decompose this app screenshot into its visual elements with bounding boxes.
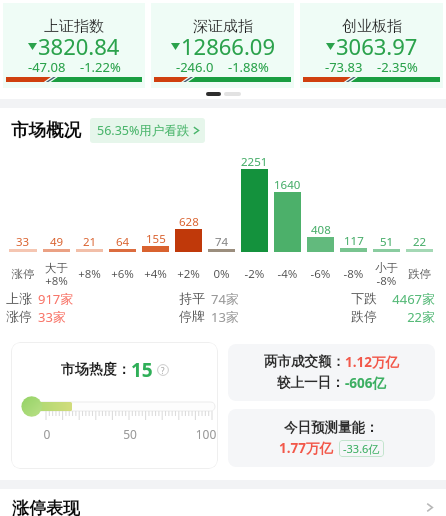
staticText: -47.08 [28, 58, 66, 76]
staticText: 50 [114, 426, 146, 442]
staticText: 今日预测量能： [284, 419, 379, 436]
staticText: 74家 [211, 290, 239, 305]
staticText: 较上一日： [277, 374, 345, 391]
staticText: -33.6亿 [343, 441, 380, 456]
staticText: -4% [271, 266, 304, 282]
staticText: 21 [83, 234, 97, 250]
staticText: 56.35%用户看跌 [97, 122, 190, 139]
staticText: 33家 [38, 308, 66, 323]
staticText: -2.35% [377, 58, 418, 76]
staticText: +4% [139, 266, 172, 282]
button[interactable]: 两市成交额： [228, 344, 435, 401]
staticText: 小于 -8% [370, 261, 403, 287]
staticText: 涨停表现 [12, 498, 80, 516]
staticText: 跌停 [351, 308, 377, 323]
staticText: -6% [304, 266, 337, 282]
button[interactable]: 涨停表现 [0, 489, 446, 516]
staticText: +8% [73, 266, 106, 282]
staticText: -1.88% [228, 58, 269, 76]
staticText: 1.12万亿 [345, 353, 399, 371]
staticText: 408 [311, 222, 331, 238]
other: 更多 [426, 501, 434, 514]
staticText: 两市成交额： [264, 353, 345, 370]
button[interactable]: 深证成指 [151, 3, 294, 88]
button[interactable]: 市场热度： [11, 342, 218, 469]
staticText: -606亿 [345, 374, 386, 392]
staticText: 涨停 [6, 267, 40, 281]
staticText: 74 [215, 234, 229, 250]
button[interactable]: 56.35%用户看跌 [90, 118, 205, 143]
staticText: ? [161, 365, 165, 376]
staticText: 3820.84 [38, 31, 120, 61]
staticText: 49 [50, 234, 64, 250]
staticText: 117 [344, 233, 364, 249]
staticText: 下跌 [351, 290, 377, 305]
staticText: 155 [146, 231, 166, 247]
staticText: 13家 [211, 308, 239, 323]
staticText: 深证成指 [193, 17, 253, 36]
staticText: -246.0 [176, 58, 214, 76]
staticText: 2251 [241, 154, 268, 170]
staticText: 涨停 [6, 308, 32, 323]
button[interactable]: 市场热度说明 [157, 364, 169, 376]
staticText: 持平 [179, 290, 205, 305]
staticText: 628 [179, 214, 199, 230]
staticText: 22家 [0, 308, 435, 323]
staticText: 1640 [274, 177, 301, 193]
staticText: 上证指数 [44, 17, 104, 36]
staticText: 大于 +8% [40, 261, 73, 287]
staticText: 上涨 [6, 290, 32, 305]
staticText: -8% [337, 266, 370, 282]
staticText: +2% [172, 266, 205, 282]
staticText: 创业板指 [342, 17, 402, 36]
staticText: 市场概况 [11, 119, 81, 141]
staticText: 22 [413, 234, 427, 250]
staticText: 15 [131, 357, 153, 383]
staticText: 跌停 [403, 267, 436, 281]
staticText: 12866.09 [181, 31, 275, 61]
staticText: 停牌 [179, 308, 205, 323]
staticText: 51 [380, 234, 394, 250]
button[interactable]: 创业板指 [300, 3, 443, 88]
staticText: 33 [16, 234, 30, 250]
staticText: 100 [190, 426, 218, 442]
staticText: 市场热度： [61, 361, 131, 379]
staticText: 4467家 [0, 290, 435, 305]
staticText: +6% [106, 266, 139, 282]
button[interactable]: 上证指数 [3, 3, 145, 88]
staticText: 0% [205, 266, 238, 282]
button[interactable]: 今日预测量能： [228, 409, 435, 467]
staticText: 64 [116, 234, 130, 250]
staticText: -1.22% [80, 58, 121, 76]
staticText: 3063.97 [336, 31, 418, 61]
staticText: 917家 [38, 290, 74, 305]
staticText: 0 [31, 426, 63, 442]
staticText: -2% [238, 266, 271, 282]
staticText: -73.83 [325, 58, 363, 76]
staticText: 1.77万亿 [279, 439, 333, 457]
